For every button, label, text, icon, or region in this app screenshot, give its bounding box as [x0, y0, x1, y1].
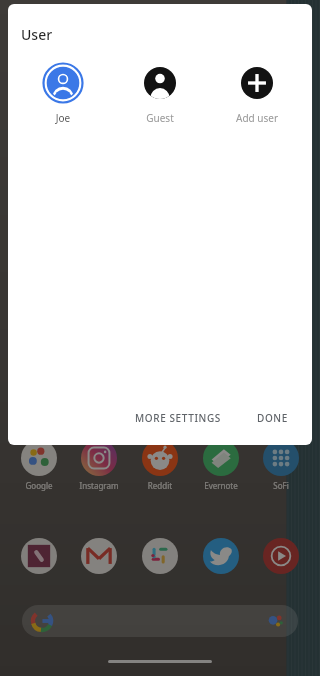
button[interactable]: SoFi: [253, 440, 309, 491]
other: Joe: [41, 61, 85, 105]
button[interactable]: Guest: [114, 61, 206, 125]
other: Guest: [138, 61, 182, 105]
staticText: DONE: [257, 411, 288, 425]
button[interactable]: Phone: [11, 528, 67, 584]
button[interactable]: Add user: [211, 61, 303, 125]
button[interactable]: Slack: [132, 528, 188, 584]
button[interactable]: Gmail: [71, 528, 127, 584]
staticText: Add user: [211, 111, 303, 125]
button[interactable]: Reddit: [132, 440, 188, 491]
staticText: Google: [11, 480, 67, 491]
button[interactable]: YouTube Music: [253, 528, 309, 584]
other: Add user: [235, 61, 279, 105]
button[interactable]: Evernote: [193, 440, 249, 491]
staticText: Instagram: [71, 480, 127, 491]
button[interactable]: Joe: [17, 61, 109, 125]
button[interactable]: Google: [11, 440, 67, 491]
button[interactable]: Instagram: [71, 440, 127, 491]
staticText: Reddit: [132, 480, 188, 491]
button[interactable]: Twitter: [193, 528, 249, 584]
staticText: MORE SETTINGS: [135, 411, 221, 425]
button[interactable]: Google search: [22, 605, 298, 637]
staticText: User: [21, 25, 53, 44]
staticText: Guest: [114, 111, 206, 125]
button[interactable]: MORE SETTINGS: [127, 405, 229, 431]
staticText: SoFi: [253, 480, 309, 491]
staticText: Joe: [17, 111, 109, 125]
button[interactable]: DONE: [249, 405, 296, 431]
staticText: Evernote: [193, 480, 249, 491]
